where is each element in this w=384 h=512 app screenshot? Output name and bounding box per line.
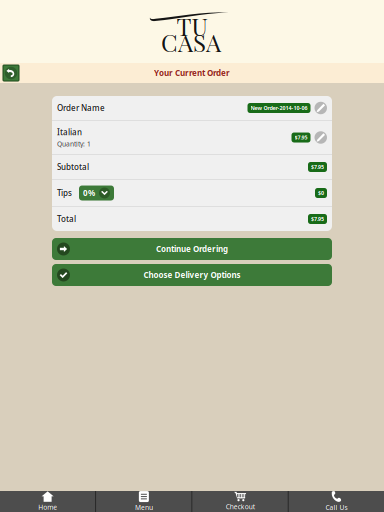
- button[interactable]: Menu: [96, 491, 191, 512]
- staticText: Your Current Order: [154, 68, 230, 78]
- staticText: CASA: [161, 26, 221, 58]
- button[interactable]: Checkout: [192, 491, 288, 512]
- staticText: New Order-2014-10-06: [250, 104, 307, 112]
- staticText: 0%: [83, 188, 95, 198]
- button[interactable]: Continue Ordering: [52, 238, 332, 260]
- button[interactable]: Home: [0, 491, 95, 512]
- staticText: Total: [57, 214, 76, 224]
- button[interactable]: 0%: [79, 185, 114, 200]
- staticText: $0: [318, 189, 324, 197]
- button[interactable]: Choose Delivery Options: [52, 264, 332, 286]
- staticText: TU: [176, 10, 207, 42]
- staticText: Continue Ordering: [156, 244, 228, 254]
- button[interactable]: Edit: [314, 131, 327, 144]
- staticText: Call Us: [325, 503, 347, 512]
- staticText: $7.95: [311, 163, 324, 171]
- button[interactable]: Back: [3, 65, 19, 81]
- staticText: Quantity: 1: [57, 139, 91, 148]
- staticText: Subtotal: [57, 162, 89, 172]
- staticText: Italian: [57, 127, 82, 137]
- staticText: Home: [38, 503, 57, 512]
- staticText: Choose Delivery Options: [143, 270, 240, 280]
- staticText: Tips: [57, 188, 72, 198]
- staticText: $7.95: [311, 215, 324, 223]
- button[interactable]: Edit: [314, 102, 327, 114]
- staticText: $7.95: [294, 134, 307, 141]
- staticText: Menu: [135, 503, 153, 512]
- staticText: Order Name: [57, 103, 105, 113]
- button[interactable]: Call Us: [289, 491, 384, 512]
- staticText: Checkout: [226, 502, 255, 511]
